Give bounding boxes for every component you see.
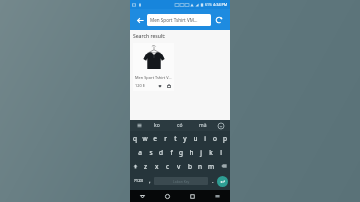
button[interactable]: d: [156, 145, 166, 159]
staticText: h: [189, 148, 194, 157]
staticText: u: [193, 134, 198, 143]
button[interactable]: có: [168, 120, 191, 131]
staticText: Laban Key: [173, 179, 190, 184]
staticText: b: [188, 162, 192, 171]
staticText: có: [177, 122, 183, 129]
button[interactable]: q: [130, 131, 140, 145]
staticText: k: [209, 148, 213, 157]
staticText: n: [198, 162, 203, 171]
button[interactable]: Backspace: [217, 159, 230, 173]
button[interactable]: Men Sport Tshirt V...: [133, 43, 174, 91]
button[interactable]: f: [166, 145, 176, 159]
staticText: q: [133, 134, 137, 143]
button[interactable]: l: [216, 145, 226, 159]
staticText: w: [142, 134, 148, 143]
button[interactable]: ko: [146, 120, 168, 131]
staticText: x: [155, 162, 159, 171]
staticText: p: [223, 134, 227, 143]
button[interactable]: Home: [155, 190, 180, 202]
staticText: f: [170, 148, 173, 157]
button[interactable]: u: [190, 131, 200, 145]
button[interactable]: Back: [130, 190, 155, 202]
button[interactable]: Refresh: [211, 12, 227, 28]
staticText: Men Sport Tshirt V...: [135, 75, 172, 80]
button[interactable]: p: [220, 131, 230, 145]
staticText: a: [138, 148, 142, 157]
button[interactable]: Settings: [132, 120, 146, 131]
button[interactable]: Hide keyboard: [205, 190, 230, 202]
button[interactable]: s: [145, 145, 156, 159]
staticText: ?123: [134, 178, 144, 184]
button[interactable]: Enter: [217, 176, 228, 187]
staticText: .: [212, 177, 214, 185]
staticText: c: [166, 162, 170, 171]
button[interactable]: w: [140, 131, 150, 145]
staticText: l: [220, 148, 222, 157]
button[interactable]: x: [151, 159, 162, 173]
button[interactable]: z: [141, 159, 151, 173]
button[interactable]: o: [210, 131, 220, 145]
button[interactable]: a: [134, 145, 145, 159]
button[interactable]: y: [180, 131, 190, 145]
button[interactable]: c: [162, 159, 173, 173]
button[interactable]: Shift: [130, 159, 141, 173]
button[interactable]: Add to cart: [165, 82, 172, 89]
staticText: t: [174, 134, 177, 143]
button[interactable]: Emoji: [214, 120, 228, 131]
staticText: e: [153, 134, 157, 143]
button[interactable]: b: [184, 159, 195, 173]
button[interactable]: m: [206, 159, 217, 173]
staticText: 61%: [205, 2, 212, 7]
button[interactable]: Favorite: [156, 82, 163, 89]
staticText: ko: [154, 122, 160, 129]
button[interactable]: ?123: [132, 173, 145, 189]
staticText: 120 $: [135, 83, 145, 88]
button[interactable]: Comma: [145, 173, 154, 189]
button[interactable]: Men Sport Tshirt VM...: [147, 14, 211, 26]
button[interactable]: mà: [191, 120, 214, 131]
staticText: g: [179, 148, 183, 157]
button[interactable]: v: [173, 159, 184, 173]
button[interactable]: Recents: [180, 190, 205, 202]
button[interactable]: n: [195, 159, 206, 173]
button[interactable]: g: [176, 145, 186, 159]
button[interactable]: Space: [154, 177, 208, 185]
staticText: s: [149, 148, 153, 157]
staticText: z: [144, 162, 148, 171]
staticText: o: [213, 134, 217, 143]
staticText: ,: [149, 177, 151, 185]
staticText: m: [208, 162, 215, 171]
staticText: mà: [199, 122, 207, 129]
staticText: j: [200, 148, 202, 157]
staticText: v: [177, 162, 181, 171]
staticText: r: [164, 134, 167, 143]
button[interactable]: e: [150, 131, 160, 145]
button[interactable]: j: [196, 145, 206, 159]
button[interactable]: t: [170, 131, 180, 145]
button[interactable]: r: [160, 131, 170, 145]
button[interactable]: k: [206, 145, 216, 159]
button[interactable]: Back: [133, 13, 147, 27]
staticText: i: [204, 134, 206, 143]
button[interactable]: h: [186, 145, 196, 159]
button[interactable]: i: [200, 131, 210, 145]
button[interactable]: Period: [208, 173, 217, 189]
staticText: d: [159, 148, 163, 157]
staticText: Men Sport Tshirt VM...: [150, 17, 198, 23]
staticText: y: [183, 134, 187, 143]
staticText: Search result:: [133, 33, 166, 40]
staticText: 4:34 PM: [213, 2, 228, 7]
